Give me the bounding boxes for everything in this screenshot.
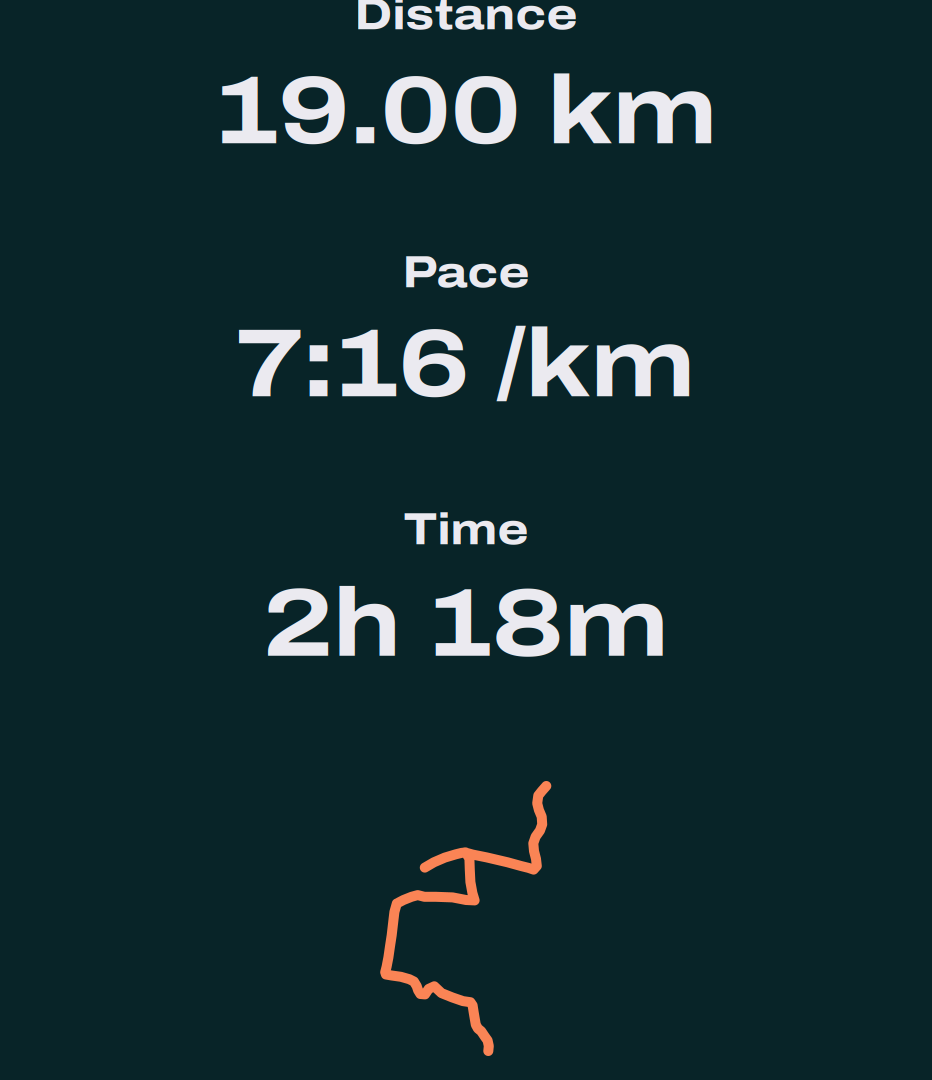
- staticText: 19.00 km: [214, 59, 717, 163]
- staticText: Pace: [402, 248, 529, 296]
- staticText: Time: [403, 506, 528, 553]
- staticText: 2h 18m: [263, 571, 669, 676]
- staticText: 7:16 /km: [236, 312, 695, 416]
- staticText: Distance: [354, 0, 577, 38]
